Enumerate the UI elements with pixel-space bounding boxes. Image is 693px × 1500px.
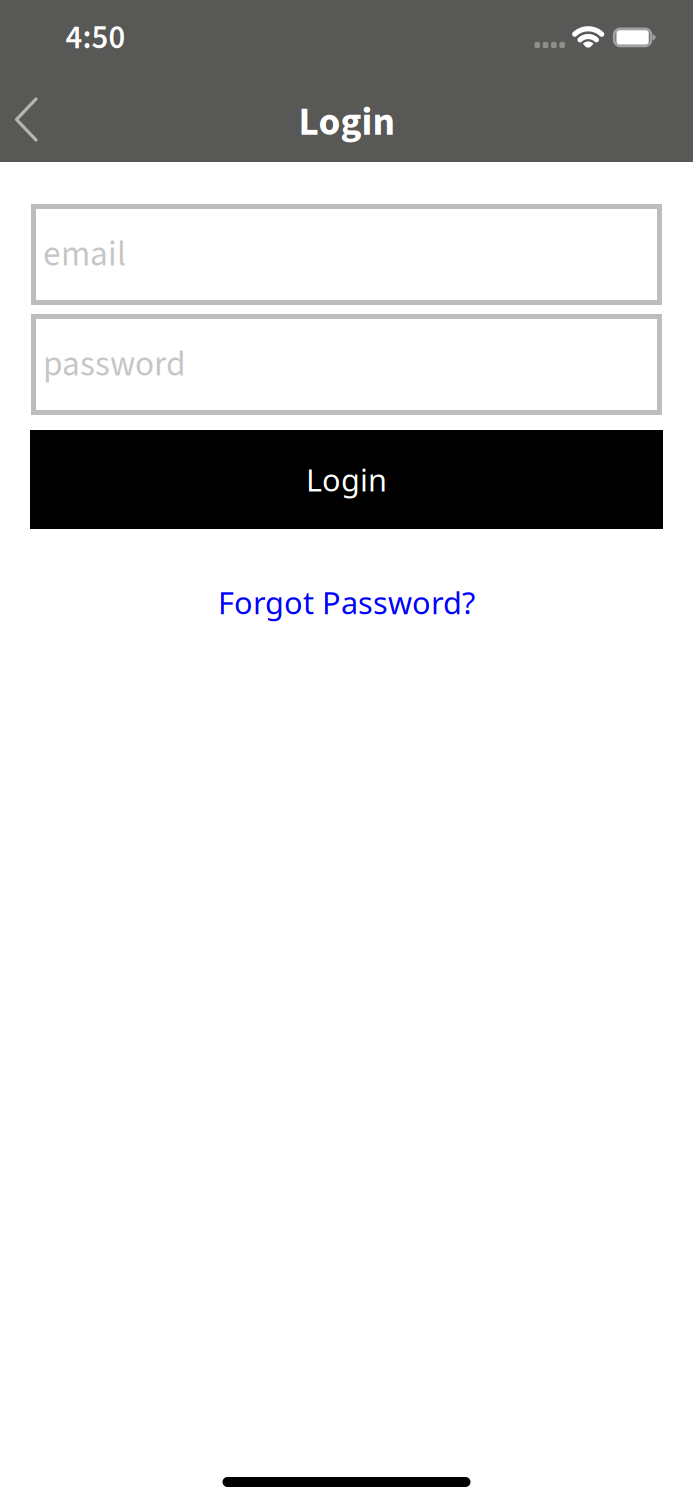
staticText: 4:50 xyxy=(65,15,125,61)
button[interactable]: Login xyxy=(30,430,663,529)
textField[interactable]: email xyxy=(31,204,662,305)
staticText: Forgot Password? xyxy=(218,582,475,623)
button[interactable]: Back xyxy=(0,81,60,158)
textField[interactable]: password xyxy=(31,314,662,415)
button[interactable]: Forgot Password? xyxy=(218,582,475,623)
staticText: email xyxy=(43,229,126,280)
staticText: password xyxy=(43,339,186,390)
staticText: Login xyxy=(306,459,387,500)
staticText: Login xyxy=(298,94,394,150)
